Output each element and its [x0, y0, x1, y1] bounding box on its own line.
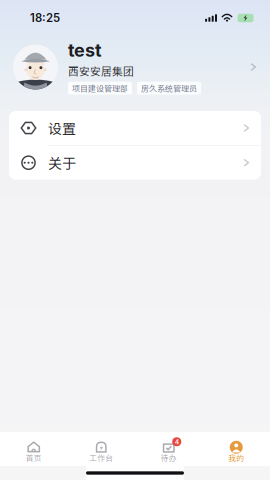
staticText: 房久系统管理员 — [141, 82, 197, 94]
button[interactable]: test — [0, 29, 270, 105]
staticText: test — [68, 39, 102, 61]
staticText: 设置 — [48, 118, 76, 138]
button[interactable]: 设置 — [9, 111, 261, 145]
staticText: 工作台 — [89, 452, 113, 463]
staticText: 关于 — [48, 153, 76, 173]
staticText: 4 — [175, 438, 179, 446]
staticText: 待办 — [161, 452, 177, 463]
staticText: 18:25 — [30, 11, 60, 25]
button[interactable]: 我的 — [202, 441, 270, 461]
staticText: 首页 — [26, 452, 42, 463]
staticText: 项目建设管理部 — [72, 82, 128, 94]
button[interactable]: 首页 — [0, 441, 67, 461]
staticText: 西安安居集团 — [68, 63, 134, 79]
staticText: 我的 — [228, 452, 244, 463]
button[interactable]: 关于 — [9, 146, 261, 180]
button[interactable]: 4 — [135, 441, 202, 461]
button[interactable]: 工作台 — [67, 441, 135, 461]
